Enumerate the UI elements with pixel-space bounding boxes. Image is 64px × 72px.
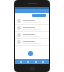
- button[interactable]: [15, 39, 49, 46]
- button[interactable]: [32, 14, 46, 17]
- button[interactable]: Add: [28, 51, 33, 56]
- button[interactable]: [15, 32, 49, 39]
- button[interactable]: [15, 25, 49, 32]
- button[interactable]: [15, 18, 49, 25]
